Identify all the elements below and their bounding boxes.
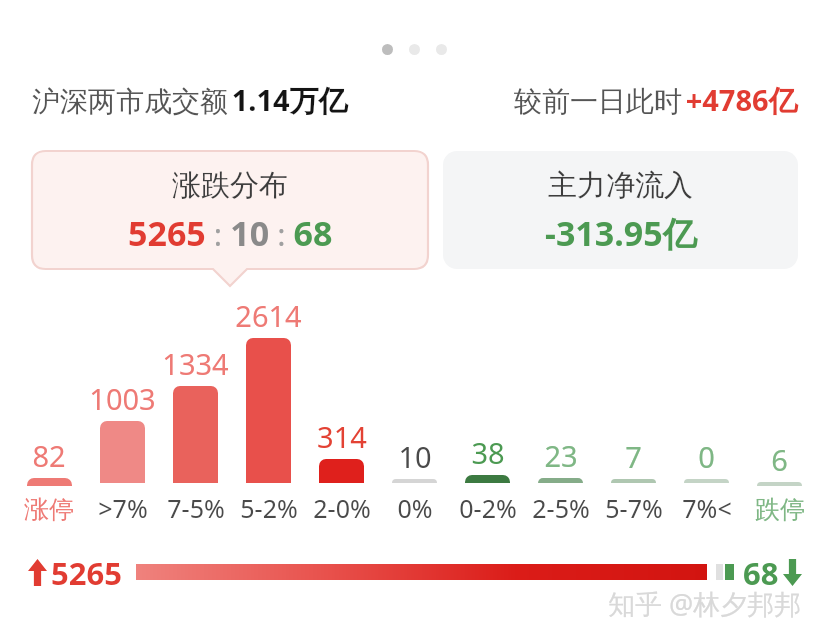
staticText: 0 <box>698 437 715 476</box>
staticText: 7 <box>625 437 642 476</box>
button[interactable]: 主力净流入 <box>443 151 798 269</box>
staticText: 沪深两市成交额 1.14万亿 <box>32 80 348 120</box>
staticText: >7% <box>98 491 148 525</box>
staticText: 0-2% <box>459 491 517 525</box>
staticText: 10 <box>398 437 432 476</box>
staticText: 2-5% <box>532 491 590 525</box>
staticText: 38 <box>471 433 505 472</box>
staticText: 314 <box>317 417 367 456</box>
staticText: 6 <box>771 440 788 479</box>
staticText: 23 <box>544 436 578 475</box>
staticText: 1334 <box>162 344 229 383</box>
staticText: 68 <box>743 552 779 592</box>
staticText: 跌停 <box>755 494 805 525</box>
staticText: 涨跌分布 <box>172 167 288 204</box>
staticText: 涨停 <box>24 494 74 525</box>
staticText: 知乎 @林夕邦邦 <box>608 585 802 622</box>
staticText: 5-2% <box>240 491 298 525</box>
staticText: -313.95亿 <box>545 210 697 256</box>
staticText: 82 <box>32 436 66 475</box>
other: Declining stocks <box>783 559 802 586</box>
staticText: 7%< <box>682 491 732 525</box>
other: Advancing stocks <box>28 559 47 586</box>
staticText: 1003 <box>89 379 156 418</box>
staticText: 主力净流入 <box>548 167 693 204</box>
staticText: 5-7% <box>605 491 663 525</box>
staticText: 7-5% <box>167 491 225 525</box>
staticText: 0% <box>397 491 433 525</box>
staticText: 5265 : 10 : 68 <box>128 210 333 256</box>
staticText: 2-0% <box>313 491 371 525</box>
button[interactable]: 涨跌分布 <box>32 151 428 269</box>
staticText: 2614 <box>235 296 302 335</box>
staticText: 5265 <box>51 552 122 592</box>
staticText: 较前一日此时 +4786亿 <box>514 80 798 120</box>
